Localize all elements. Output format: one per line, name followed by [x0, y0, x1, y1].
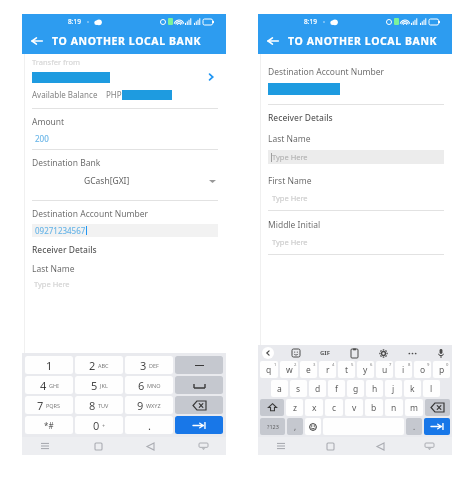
staticText: MNO [147, 382, 161, 389]
button[interactable]: Emoji [305, 418, 321, 435]
button[interactable]: Home [91, 439, 105, 453]
staticText: 6 [370, 362, 373, 368]
button[interactable]: y [357, 361, 374, 378]
button[interactable]: u [376, 361, 393, 378]
button[interactable]: s [290, 380, 307, 397]
button[interactable]: o [414, 361, 431, 378]
button[interactable]: Symbols [260, 418, 285, 435]
button[interactable]: l [423, 380, 440, 397]
button[interactable]: e [300, 361, 317, 378]
staticText: 7 [389, 362, 392, 368]
button[interactable]: 6 [125, 376, 173, 394]
button[interactable]: GCash[GXI] [32, 175, 218, 187]
button[interactable]: j [385, 380, 402, 397]
staticText: JKL [100, 382, 108, 389]
button[interactable]: f [328, 380, 345, 397]
button[interactable]: x [305, 399, 323, 416]
staticText: m [410, 402, 418, 414]
button[interactable]: 09271234567 [32, 224, 218, 237]
button[interactable]: w [280, 361, 298, 378]
staticText: DEF [149, 362, 159, 369]
button[interactable]: m [405, 399, 423, 416]
staticText: GCash[GXI] [84, 175, 130, 187]
staticText: p [439, 364, 445, 376]
button[interactable]: Type Here [268, 150, 444, 164]
button[interactable]: . [125, 416, 173, 434]
button[interactable]: q [260, 361, 278, 378]
button[interactable]: more [405, 346, 419, 360]
button[interactable]: sticker [289, 346, 303, 360]
button[interactable]: 8 [75, 396, 123, 414]
button[interactable]: clipboard [347, 346, 361, 360]
button[interactable]: n [385, 399, 403, 416]
button[interactable]: d [309, 380, 326, 397]
button[interactable]: Collapse toolbar [262, 347, 274, 359]
button[interactable]: Delete [175, 396, 223, 414]
button[interactable]: 1 [25, 356, 73, 374]
button[interactable]: z [286, 399, 303, 416]
button[interactable]: Shift [260, 399, 284, 416]
button[interactable]: mic [434, 346, 448, 360]
button[interactable]: settings [376, 346, 390, 360]
button[interactable]: Back [143, 439, 157, 453]
button[interactable]: Period [406, 418, 422, 435]
staticText: o [420, 364, 426, 376]
button[interactable]: Space [175, 376, 223, 394]
button[interactable]: Back [373, 439, 387, 453]
staticText: k [410, 383, 415, 395]
staticText: ?123 [267, 423, 279, 430]
button[interactable]: a [271, 380, 288, 397]
button[interactable]: r [319, 361, 336, 378]
button[interactable]: 0 [75, 416, 123, 434]
button[interactable]: t [338, 361, 355, 378]
button[interactable]: h [366, 380, 383, 397]
button[interactable]: Comma [287, 418, 303, 435]
button[interactable]: Hide keyboard [422, 439, 436, 453]
staticText: r [326, 364, 330, 376]
button[interactable]: 3 [125, 356, 173, 374]
button[interactable]: Dash [175, 356, 223, 374]
staticText: + [102, 422, 106, 429]
button[interactable]: GIF [318, 346, 332, 360]
button[interactable]: Enter [175, 416, 223, 434]
staticText: 9 [137, 398, 144, 413]
button[interactable]: c [325, 399, 343, 416]
button[interactable]: Back [22, 28, 52, 54]
button[interactable]: Recents [274, 439, 288, 453]
button[interactable]: 2 [75, 356, 123, 374]
staticText: n [391, 402, 397, 414]
staticText: Amount [32, 116, 65, 128]
staticText: y [363, 364, 368, 376]
staticText: TO ANOTHER LOCAL BANK [52, 34, 202, 48]
staticText: g [353, 383, 359, 395]
staticText: b [371, 402, 377, 414]
staticText: 7 [37, 398, 44, 413]
staticText: 3 [313, 362, 316, 368]
button[interactable]: Back [258, 28, 288, 54]
button[interactable]: k [404, 380, 421, 397]
button[interactable]: Enter [424, 418, 450, 435]
button[interactable]: 4 [25, 376, 73, 394]
button[interactable]: 9 [125, 396, 173, 414]
button[interactable]: 7 [25, 396, 73, 414]
button[interactable]: b [365, 399, 383, 416]
button[interactable]: Select account [204, 70, 218, 84]
button[interactable]: v [345, 399, 363, 416]
button[interactable]: Delete [425, 399, 450, 416]
staticText: Transfer from [32, 57, 81, 67]
button[interactable]: p [433, 361, 450, 378]
button[interactable]: i [395, 361, 412, 378]
button[interactable]: *# [25, 416, 73, 434]
staticText: Destination Account Number [32, 208, 148, 220]
staticText: d [315, 383, 321, 395]
button[interactable]: Home [323, 439, 337, 453]
button[interactable]: Recents [38, 439, 52, 453]
button[interactable]: 5 [75, 376, 123, 394]
staticText: 5 [91, 378, 98, 393]
staticText: z [293, 402, 297, 414]
staticText: Type Here [272, 193, 308, 203]
staticText: 6 [138, 378, 145, 393]
button[interactable]: g [347, 380, 364, 397]
button[interactable]: Hide keyboard [196, 439, 210, 453]
